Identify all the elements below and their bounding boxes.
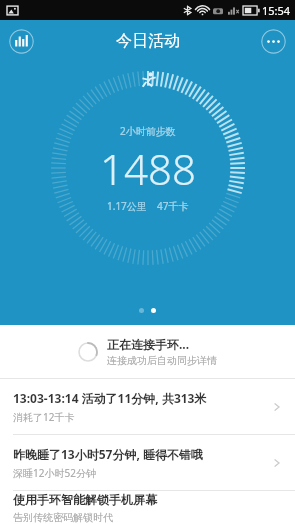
- staticText: 47千卡: [157, 199, 189, 213]
- staticText: 1488: [100, 140, 196, 197]
- button[interactable]: 13:03-13:14 活动了11分钟, 共313米: [0, 379, 295, 434]
- other: Activity: [137, 70, 159, 92]
- button[interactable]: 正在连接手环...: [0, 325, 295, 378]
- staticText: 消耗了12千卡: [13, 410, 75, 424]
- staticText: 今日活动: [116, 31, 180, 51]
- staticText: 连接成功后自动同步详情: [107, 354, 217, 367]
- staticText: 告别传统密码解锁时代: [13, 511, 113, 524]
- staticText: 使用手环智能解锁手机屏幕: [13, 492, 157, 507]
- button[interactable]: Statistics: [9, 29, 34, 54]
- button[interactable]: More options: [261, 29, 286, 54]
- staticText: 正在连接手环...: [107, 336, 190, 352]
- button[interactable]: 昨晚睡了13小时57分钟, 睡得不错哦: [0, 435, 295, 490]
- staticText: 1.17公里: [107, 199, 147, 213]
- staticText: 13:03-13:14 活动了11分钟, 共313米: [13, 390, 207, 406]
- staticText: 2小时前步数: [120, 124, 176, 138]
- staticText: 昨晚睡了13小时57分钟, 睡得不错哦: [13, 446, 203, 462]
- staticText: 深睡12小时52分钟: [13, 466, 96, 480]
- staticText: 15:54: [262, 3, 291, 18]
- button[interactable]: 使用手环智能解锁手机屏幕: [0, 491, 295, 524]
